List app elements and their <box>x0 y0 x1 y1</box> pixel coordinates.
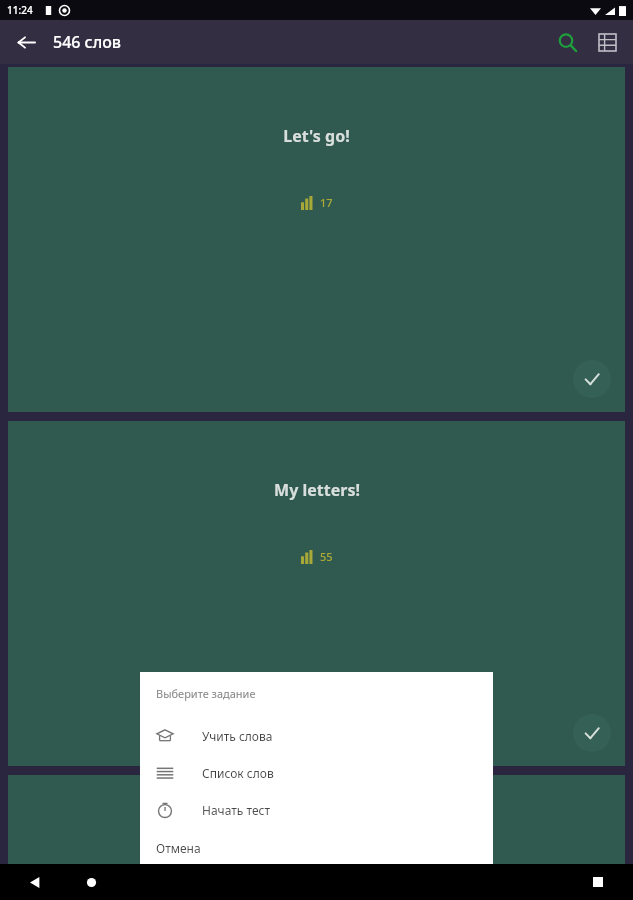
button[interactable]: Let's go! <box>8 67 625 412</box>
button[interactable]: Recent apps <box>583 867 613 897</box>
button[interactable]: Home <box>76 867 106 897</box>
staticText: 11:24 <box>7 3 33 17</box>
staticText: Начать тест <box>202 802 271 818</box>
button[interactable]: View mode <box>587 22 627 62</box>
staticText: Список слов <box>202 765 274 781</box>
button[interactable]: Back <box>8 24 44 60</box>
staticText: Let's go! <box>283 125 350 147</box>
button[interactable]: Отмена <box>140 832 493 864</box>
staticText: 55 <box>320 549 333 564</box>
button[interactable]: Учить слова <box>140 717 493 754</box>
staticText: 17 <box>320 195 333 210</box>
staticText: 546 слов <box>53 31 122 53</box>
staticText: Выберите задание <box>156 686 256 701</box>
button[interactable]: Список слов <box>140 754 493 791</box>
button[interactable]: Mark done <box>573 360 611 398</box>
button[interactable]: Search <box>547 22 587 62</box>
button[interactable]: Начать тест <box>140 791 493 828</box>
button[interactable]: Mark done <box>573 714 611 752</box>
staticText: Учить слова <box>202 728 273 744</box>
button[interactable] <box>8 775 625 864</box>
button[interactable]: My letters! <box>8 421 625 766</box>
staticText: Отмена <box>156 840 201 856</box>
staticText: My letters! <box>274 479 360 501</box>
button[interactable]: Back <box>20 867 50 897</box>
